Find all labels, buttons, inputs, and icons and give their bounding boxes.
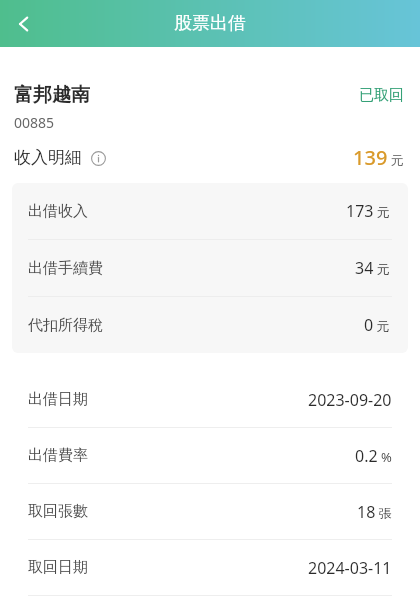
staticText: 139 元 bbox=[353, 144, 404, 171]
staticText: 富邦越南 bbox=[14, 83, 90, 107]
staticText: 出借收入 bbox=[28, 202, 88, 221]
staticText: 代扣所得稅 bbox=[28, 316, 103, 335]
staticText: 出借日期 bbox=[28, 390, 88, 409]
staticText: 00885 bbox=[14, 113, 55, 132]
button[interactable]: 取回張數 bbox=[0, 484, 420, 539]
button[interactable]: 取回日期 bbox=[0, 540, 420, 595]
staticText: 股票出借 bbox=[174, 12, 246, 35]
staticText: 0.2 % bbox=[355, 445, 392, 467]
staticText: 取回張數 bbox=[28, 502, 88, 521]
staticText: 出借費率 bbox=[28, 446, 88, 465]
button[interactable]: 出借費率 bbox=[0, 428, 420, 483]
staticText: 已取回 bbox=[359, 86, 404, 105]
staticText: 2023-09-20 bbox=[308, 389, 392, 411]
staticText: 出借手續費 bbox=[28, 259, 103, 278]
staticText: 2024-03-11 bbox=[308, 557, 392, 579]
staticText: 0 元 bbox=[364, 314, 390, 336]
staticText: 收入明細 bbox=[14, 147, 82, 168]
button[interactable]: 代扣所得稅 bbox=[12, 297, 408, 353]
button[interactable]: 出借日期 bbox=[0, 372, 420, 427]
button[interactable]: Back bbox=[0, 0, 48, 47]
button[interactable]: 出借手續費 bbox=[12, 240, 408, 296]
button[interactable]: Income details info bbox=[88, 148, 108, 168]
button[interactable]: 出借收入 bbox=[12, 183, 408, 239]
staticText: 173 元 bbox=[346, 200, 390, 222]
staticText: 取回日期 bbox=[28, 558, 88, 577]
staticText: 34 元 bbox=[355, 257, 390, 279]
staticText: 18 張 bbox=[357, 501, 392, 523]
